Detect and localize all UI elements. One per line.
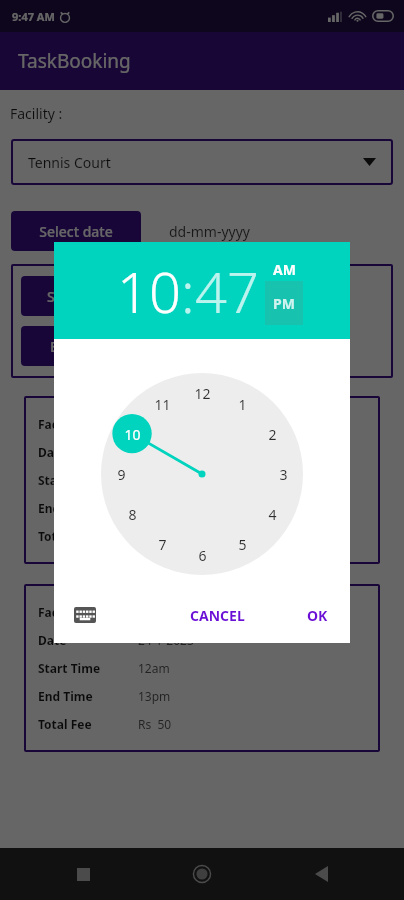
button[interactable]: PM xyxy=(265,281,303,325)
button[interactable]: 2 xyxy=(255,417,289,451)
staticText: 6 xyxy=(198,546,207,565)
staticText: 9:47 AM xyxy=(12,9,55,24)
button[interactable]: Switch to text input xyxy=(68,598,102,632)
button[interactable]: 6 xyxy=(185,538,219,572)
staticText: 5 xyxy=(238,535,247,554)
staticText: Select date xyxy=(39,222,113,241)
staticText: 12 xyxy=(194,384,211,403)
staticText: 3 xyxy=(279,465,288,484)
button[interactable]: 10 xyxy=(117,253,181,329)
button[interactable]: 9 xyxy=(104,457,138,491)
staticText: Total Fee xyxy=(38,716,92,732)
button[interactable]: 47 xyxy=(195,253,259,329)
button[interactable]: Select date xyxy=(11,211,141,251)
staticText: 7 xyxy=(158,535,167,554)
button[interactable]: OK xyxy=(307,606,328,625)
staticText: Rs 50 xyxy=(138,528,172,544)
button[interactable]: AM xyxy=(265,257,303,281)
button[interactable]: 10 xyxy=(115,417,149,451)
staticText: Facility xyxy=(38,604,81,620)
button[interactable]: End Time xyxy=(21,326,141,366)
staticText: Tennis Court xyxy=(138,604,209,620)
staticText: 24-1-2023 xyxy=(138,632,194,648)
staticText: Total Fee xyxy=(38,528,92,544)
staticText: End Time xyxy=(38,500,93,516)
staticText: End Time xyxy=(50,337,112,356)
button[interactable]: 4 xyxy=(255,497,289,531)
button[interactable]: Home xyxy=(183,855,221,893)
button[interactable]: 11 xyxy=(145,387,179,421)
staticText: Tennis Court xyxy=(138,416,209,432)
staticText: Rs 50 xyxy=(138,716,172,732)
staticText: Start Time xyxy=(38,472,101,488)
staticText: Tennis Court xyxy=(28,153,111,172)
staticText: 12am xyxy=(138,660,170,676)
staticText: 10 xyxy=(124,425,141,444)
staticText: 10 xyxy=(117,253,181,329)
staticText: Start Time xyxy=(38,660,101,676)
staticText: 11 xyxy=(154,395,171,414)
staticText: Start Time xyxy=(47,287,116,306)
staticText: PM xyxy=(273,294,295,313)
button[interactable]: 3 xyxy=(266,457,300,491)
staticText: 24-1-2023 xyxy=(138,444,194,460)
button[interactable]: CANCEL xyxy=(190,606,245,625)
staticText: 4 xyxy=(268,505,277,524)
button[interactable]: Recent apps xyxy=(64,855,102,893)
staticText: 13pm xyxy=(138,688,171,704)
staticText: OK xyxy=(307,606,328,625)
button[interactable]: Tennis Court xyxy=(11,139,393,185)
staticText: TaskBooking xyxy=(18,48,131,74)
button[interactable]: 1 xyxy=(225,387,259,421)
button[interactable]: 7 xyxy=(145,527,179,561)
button[interactable]: Start Time xyxy=(21,276,141,316)
staticText: CANCEL xyxy=(190,606,245,625)
staticText: 1 xyxy=(238,395,247,414)
button[interactable]: 8 xyxy=(115,497,149,531)
staticText: 9 xyxy=(117,465,126,484)
button[interactable]: Back xyxy=(302,855,340,893)
button[interactable]: 12 xyxy=(185,376,219,410)
staticText: AM xyxy=(273,260,296,279)
staticText: End Time xyxy=(38,688,93,704)
staticText: 2 xyxy=(268,425,277,444)
staticText: Facility : xyxy=(10,104,63,123)
staticText: 8 xyxy=(128,505,137,524)
staticText: dd-mm-yyyy xyxy=(169,222,250,241)
staticText: Date xyxy=(38,632,67,648)
staticText: Date xyxy=(38,444,67,460)
button[interactable]: 5 xyxy=(225,527,259,561)
staticText: : xyxy=(181,253,195,329)
staticText: Facility xyxy=(38,416,81,432)
staticText: 47 xyxy=(195,253,259,329)
